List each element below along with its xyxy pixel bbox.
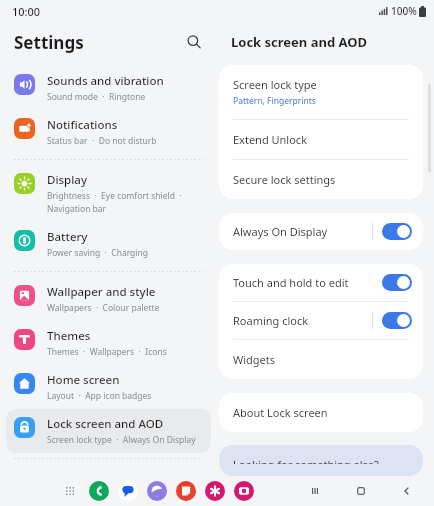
staticText: Themes · Wallpapers · Icons bbox=[47, 346, 167, 358]
button[interactable]: Notes bbox=[176, 481, 196, 501]
staticText: Layout · App icon badges bbox=[47, 390, 152, 402]
staticText: Widgets bbox=[233, 352, 276, 367]
staticText: Wallpapers · Colour palette bbox=[47, 302, 160, 314]
staticText: Lock screen and AOD bbox=[47, 416, 164, 432]
staticText: Roaming clock bbox=[233, 313, 309, 328]
button[interactable]: Screen lock type bbox=[219, 65, 423, 119]
button[interactable]: Sounds and vibration bbox=[6, 66, 211, 110]
button[interactable]: Widgets bbox=[219, 340, 423, 379]
button[interactable]: Gallery bbox=[205, 481, 225, 501]
button[interactable]: Roaming clock bbox=[219, 302, 423, 339]
button[interactable]: Roaming clock toggle bbox=[382, 312, 412, 329]
staticText: Always On Display bbox=[233, 224, 328, 239]
staticText: Extend Unlock bbox=[233, 132, 308, 147]
button[interactable]: Themes bbox=[6, 321, 211, 365]
button[interactable]: Messages bbox=[118, 481, 138, 501]
staticText: Settings bbox=[14, 31, 84, 54]
button[interactable]: Phone bbox=[89, 481, 109, 501]
button[interactable]: About Lock screen bbox=[219, 393, 423, 432]
button[interactable]: Touch and hold to edit toggle bbox=[382, 274, 412, 291]
staticText: Themes bbox=[47, 328, 91, 344]
button[interactable]: Extend Unlock bbox=[219, 120, 423, 159]
button[interactable]: Back bbox=[396, 480, 418, 502]
staticText: Battery bbox=[47, 229, 88, 245]
staticText: Notifications bbox=[47, 117, 118, 133]
staticText: Secure lock settings bbox=[233, 172, 336, 187]
button[interactable]: Recent apps bbox=[304, 480, 326, 502]
staticText: 100% bbox=[391, 4, 417, 18]
button[interactable]: Battery bbox=[6, 222, 211, 266]
staticText: Looking for something else? bbox=[233, 457, 379, 464]
button[interactable]: Notifications bbox=[6, 110, 211, 154]
button[interactable]: Search bbox=[177, 25, 211, 59]
staticText: 10:00 bbox=[12, 4, 41, 19]
button[interactable]: Always On Display bbox=[219, 213, 423, 250]
button[interactable]: Display bbox=[6, 165, 211, 222]
button[interactable]: Touch and hold to edit bbox=[219, 264, 423, 301]
staticText: Touch and hold to edit bbox=[233, 275, 349, 290]
button[interactable]: Home screen bbox=[6, 365, 211, 409]
staticText: Home screen bbox=[47, 372, 120, 388]
staticText: Lock screen and AOD bbox=[231, 33, 368, 51]
staticText: Navigation bar bbox=[47, 203, 107, 215]
staticText: Status bar · Do not disturb bbox=[47, 135, 157, 147]
button[interactable]: Home bbox=[350, 480, 372, 502]
button[interactable]: Lock screen and AOD bbox=[6, 409, 211, 453]
staticText: Power saving · Charging bbox=[47, 247, 148, 259]
staticText: About Lock screen bbox=[233, 405, 328, 420]
button[interactable]: Secure lock settings bbox=[219, 160, 423, 199]
button[interactable]: Apps bbox=[60, 481, 80, 501]
staticText: Sounds and vibration bbox=[47, 73, 164, 89]
button[interactable]: Always On Display toggle bbox=[382, 223, 412, 240]
staticText: Screen lock type · Always On Display bbox=[47, 434, 196, 446]
staticText: Wallpaper and style bbox=[47, 284, 156, 300]
staticText: Sound mode · Ringtone bbox=[47, 91, 146, 103]
staticText: Pattern, Fingerprints bbox=[233, 95, 316, 107]
staticText: Screen lock type bbox=[233, 77, 317, 92]
button[interactable]: Wallpaper and style bbox=[6, 277, 211, 321]
staticText: Display bbox=[47, 172, 87, 188]
button[interactable]: Internet bbox=[147, 481, 167, 501]
staticText: Brightness · Eye comfort shield · bbox=[47, 190, 182, 202]
button[interactable]: Camera bbox=[234, 481, 254, 501]
